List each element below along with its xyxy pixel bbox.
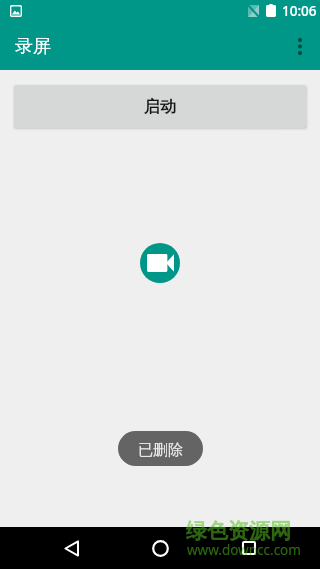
staticText: 10:06 [282, 2, 317, 20]
button[interactable]: Recent apps [225, 527, 273, 569]
button[interactable]: Back [47, 527, 95, 569]
button[interactable]: Record screen [140, 243, 180, 283]
staticText: 启动 [144, 97, 176, 117]
button[interactable]: 启动 [14, 85, 306, 128]
staticText: 录屏 [15, 35, 51, 58]
button[interactable]: 已删除 [118, 431, 203, 466]
button[interactable]: Home [136, 527, 184, 569]
staticText: 绿色资源网 [186, 518, 291, 544]
staticText: www.downcc.com [187, 541, 301, 559]
staticText: 已删除 [138, 441, 183, 460]
button[interactable]: More options [280, 26, 320, 66]
